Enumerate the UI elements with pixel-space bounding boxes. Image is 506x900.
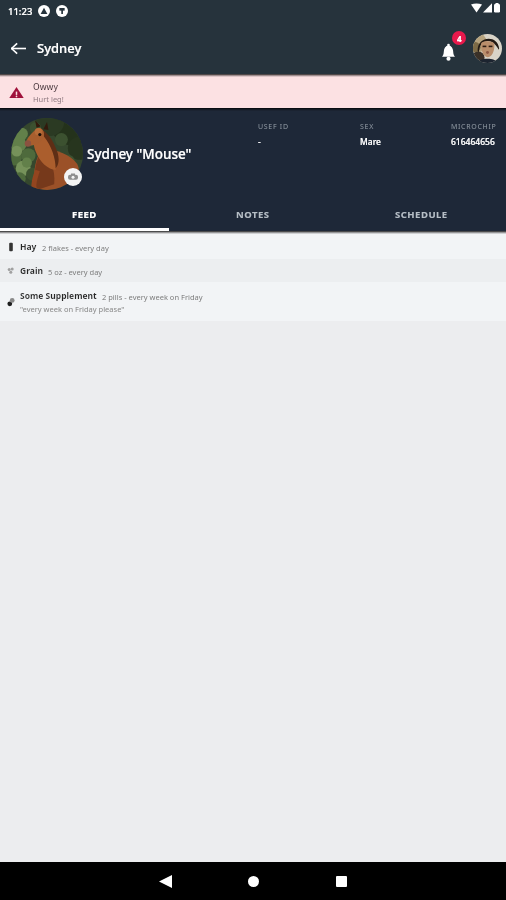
- staticText: SCHEDULE: [395, 208, 448, 221]
- staticText: 5 oz - every day: [48, 267, 103, 277]
- button[interactable]: Horse photo: [11, 118, 83, 190]
- button[interactable]: Back: [135, 862, 195, 900]
- button[interactable]: Notifications: [435, 30, 471, 66]
- staticText: MICROCHIP: [451, 122, 497, 132]
- staticText: Hurt leg!: [33, 94, 64, 104]
- staticText: -: [258, 136, 261, 148]
- button[interactable]: Owwy: [0, 77, 506, 108]
- staticText: Some Supplement: [20, 290, 97, 302]
- staticText: Grain: [20, 265, 43, 277]
- staticText: USEF ID: [258, 122, 289, 132]
- button[interactable]: NOTES: [168, 201, 337, 228]
- button[interactable]: Grain: [0, 259, 506, 282]
- staticText: Mare: [360, 136, 381, 148]
- staticText: 2 pills - every week on Friday: [102, 292, 203, 302]
- button[interactable]: Change photo: [64, 168, 82, 186]
- staticText: 11:23: [8, 5, 33, 18]
- staticText: Sydney: [37, 39, 82, 57]
- staticText: NOTES: [236, 208, 270, 221]
- staticText: 2 flakes - every day: [42, 243, 109, 253]
- button[interactable]: Back: [0, 30, 36, 66]
- button[interactable]: Profile: [473, 34, 502, 63]
- staticText: Sydney "Mouse": [87, 145, 192, 163]
- button[interactable]: FEED: [0, 201, 168, 228]
- button[interactable]: Hay: [0, 234, 506, 259]
- staticText: SEX: [360, 122, 374, 132]
- button[interactable]: Recents: [311, 862, 371, 900]
- staticText: FEED: [72, 208, 97, 221]
- button[interactable]: Home: [223, 862, 283, 900]
- staticText: "every week on Friday please": [20, 304, 125, 314]
- staticText: 616464656: [451, 136, 495, 148]
- button[interactable]: SCHEDULE: [337, 201, 506, 228]
- staticText: Owwy: [33, 81, 58, 93]
- staticText: Hay: [20, 241, 37, 253]
- button[interactable]: Some Supplement: [0, 282, 506, 321]
- staticText: 4: [457, 33, 462, 44]
